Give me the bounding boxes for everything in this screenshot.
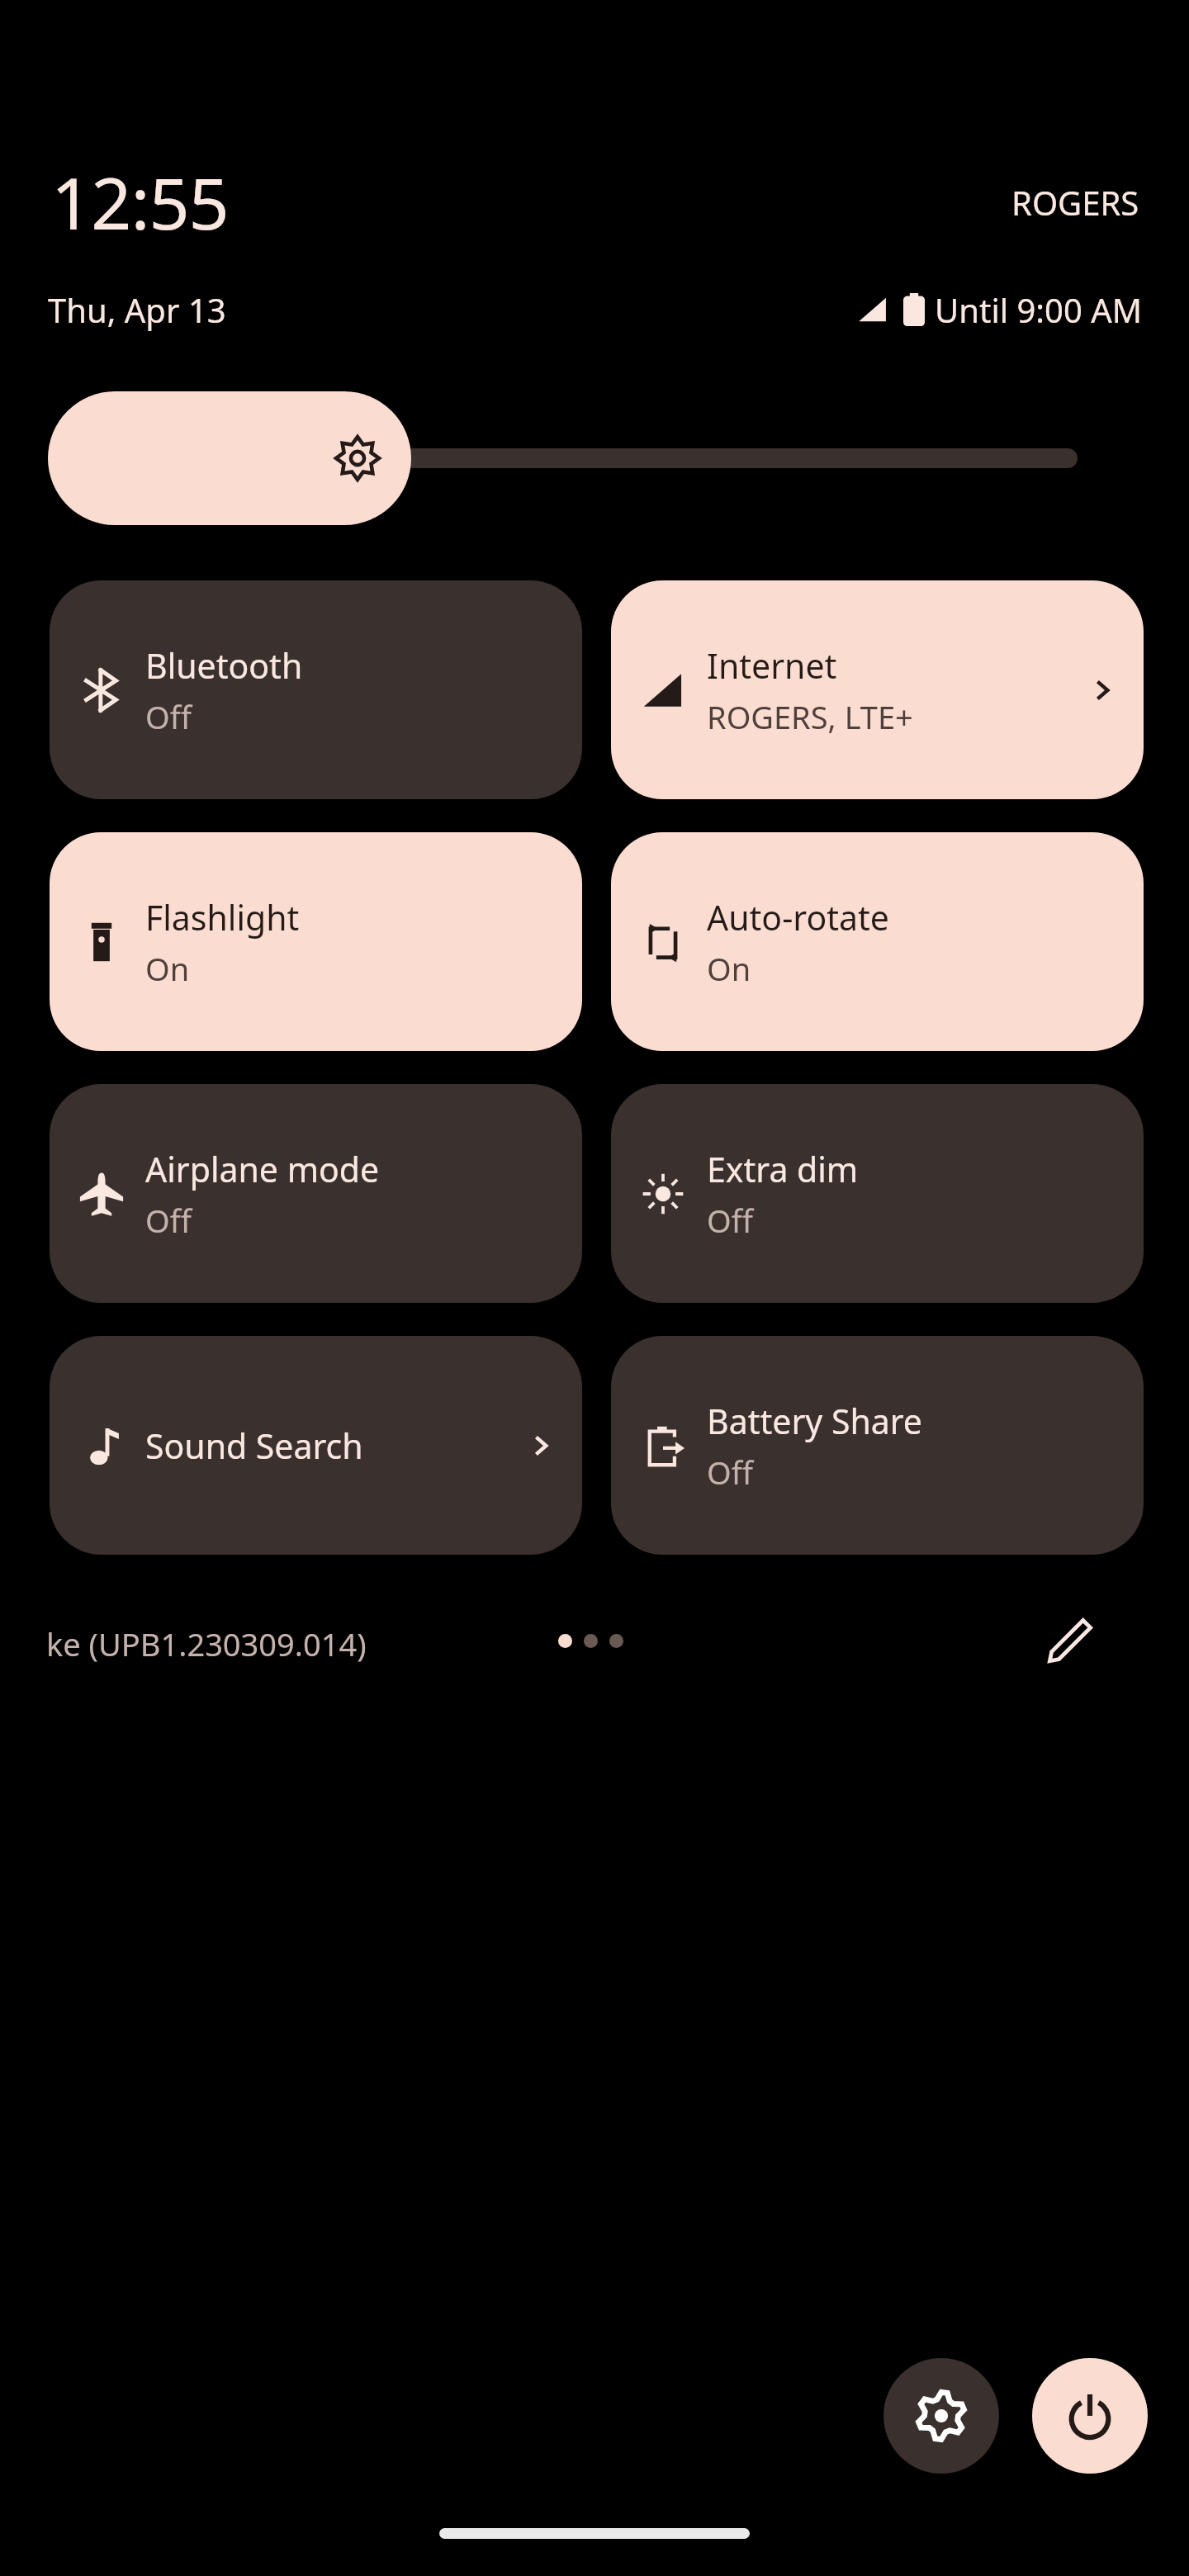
staticText: ROGERS [1011,180,1139,225]
button[interactable]: Auto-rotate [611,832,1144,1051]
button[interactable]: Extra dim [611,1084,1144,1303]
button[interactable]: Bluetooth [50,580,582,799]
staticText: Sound Search [145,1423,363,1469]
staticText: Thu, Apr 13 [48,287,226,332]
staticText: Extra dim [707,1146,859,1192]
button[interactable]: Flashlight [50,832,582,1051]
staticText: Off [707,1451,753,1494]
button[interactable]: Sound Search [50,1336,582,1555]
staticText: On [145,947,190,990]
staticText: ke (UPB1.230309.014) [46,1622,367,1665]
staticText: Off [145,1199,192,1242]
button[interactable]: Airplane mode [50,1084,582,1303]
button[interactable]: Brightness [48,391,411,525]
staticText: Bluetooth [145,642,303,689]
staticText: 12:55 [51,154,229,250]
button[interactable]: Internet [611,580,1144,799]
staticText: Auto-rotate [707,894,889,940]
staticText: ROGERS, LTE+ [707,695,913,738]
staticText: Battery Share [707,1398,922,1444]
button[interactable]: Edit tiles [1024,1593,1116,1686]
staticText: Flashlight [145,894,300,940]
staticText: Internet [707,642,837,689]
button[interactable]: Power [1032,2358,1148,2474]
staticText: Off [145,695,192,738]
staticText: On [707,947,751,990]
button[interactable]: Settings [883,2358,999,2474]
staticText: Until 9:00 AM [935,287,1143,332]
button[interactable]: Battery Share [611,1336,1144,1555]
staticText: Airplane mode [145,1146,380,1192]
staticText: Off [707,1199,753,1242]
